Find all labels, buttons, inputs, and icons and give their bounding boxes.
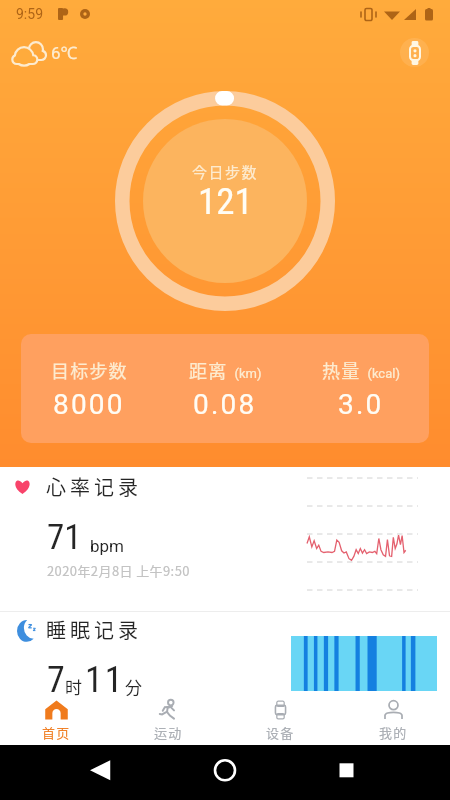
staticText: 2020年2月8日 上午9:50 <box>47 561 190 580</box>
button[interactable]: 目标步数 <box>21 334 429 443</box>
staticText: 时 <box>65 674 82 699</box>
staticText: 6℃ <box>51 41 78 64</box>
staticText: 心率记录 <box>46 472 142 501</box>
staticText: 121 <box>198 180 253 223</box>
staticText: 8000 <box>53 388 125 421</box>
staticText: 热量 <box>322 357 361 383</box>
staticText: 0.08 <box>193 388 257 421</box>
button[interactable]: 我的 <box>337 697 450 745</box>
button[interactable]: 设备 <box>224 697 337 745</box>
button[interactable]: 今日步数 <box>115 91 335 311</box>
staticText: 我的 <box>379 723 408 742</box>
staticText: 设备 <box>266 723 295 742</box>
staticText: 睡眠记录 <box>46 615 142 644</box>
staticText: 目标步数 <box>51 357 128 383</box>
staticText: bpm <box>90 536 124 556</box>
staticText: 运动 <box>154 723 183 742</box>
staticText: (km) <box>228 366 262 381</box>
button[interactable]: 睡眠记录 <box>0 611 450 697</box>
staticText: 首页 <box>42 723 71 742</box>
staticText: 11 <box>85 659 125 701</box>
staticText: 9:59 <box>16 6 43 22</box>
staticText: 7 <box>47 659 65 701</box>
button[interactable]: 首页 <box>0 697 112 745</box>
staticText: 分 <box>125 674 142 699</box>
button[interactable]: 运动 <box>112 697 224 745</box>
button[interactable]: My device <box>400 38 429 67</box>
staticText: 距离 <box>189 357 228 383</box>
staticText: 3.0 <box>338 388 384 421</box>
staticText: 71 <box>47 517 82 558</box>
staticText: 今日步数 <box>192 161 259 183</box>
button[interactable]: 心率记录 <box>0 467 450 611</box>
staticText: (kcal) <box>361 366 400 381</box>
